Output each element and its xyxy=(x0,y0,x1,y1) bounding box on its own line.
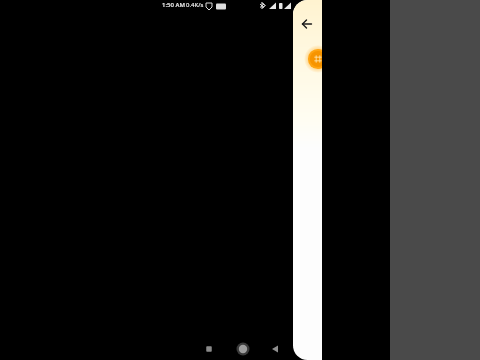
staticText: 1:50 AM xyxy=(162,1,185,9)
button[interactable]: Recents xyxy=(201,341,217,357)
button[interactable]: Back xyxy=(295,12,319,36)
staticText: 0.4K/s xyxy=(186,1,204,9)
button[interactable]: Back xyxy=(267,341,283,357)
button[interactable]: Home xyxy=(234,340,252,358)
button[interactable]: Action xyxy=(304,45,322,73)
